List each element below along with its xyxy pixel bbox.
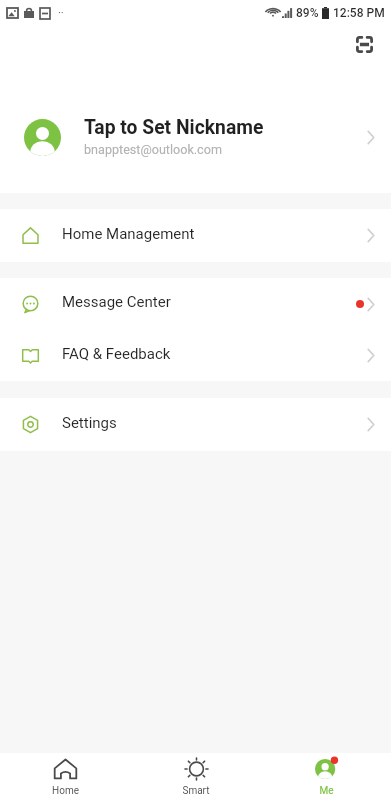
button[interactable]: Home Management <box>0 209 391 262</box>
staticText: Home Management <box>62 225 195 243</box>
staticText: Me <box>319 785 334 797</box>
staticText: Settings <box>62 414 117 432</box>
button[interactable]: FAQ & Feedback <box>0 330 391 381</box>
button[interactable]: Me <box>261 758 391 797</box>
staticText: bnapptest@outlook.com <box>84 142 222 157</box>
staticText: Message Center <box>62 293 171 311</box>
staticText: ·· <box>58 7 64 20</box>
button[interactable]: Tap to Set Nickname <box>0 81 391 193</box>
staticText: Smart <box>182 785 210 797</box>
button[interactable]: Settings <box>0 398 391 451</box>
staticText: 12:58 PM <box>333 6 385 20</box>
staticText: Home <box>52 785 79 797</box>
staticText: Tap to Set Nickname <box>84 116 264 139</box>
button[interactable]: Scan QR code <box>348 28 380 60</box>
staticText: FAQ & Feedback <box>62 345 171 363</box>
button[interactable]: Message Center <box>0 278 391 330</box>
staticText: 89% <box>296 6 319 20</box>
button[interactable]: Home <box>0 758 131 797</box>
button[interactable]: Smart <box>131 758 261 797</box>
